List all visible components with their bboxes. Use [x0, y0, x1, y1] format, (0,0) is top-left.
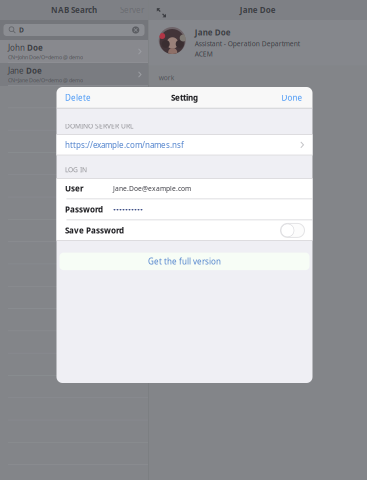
staticText: CN=John Doe/O=demo @ demo: [8, 53, 83, 61]
staticText: User: [65, 183, 84, 194]
staticText: Password: [65, 204, 103, 215]
staticText: Done: [281, 92, 302, 103]
staticText: Delete: [65, 92, 91, 103]
staticText: Jane Doe: [240, 5, 276, 15]
staticText: https://example.com/names.nsf: [65, 139, 184, 150]
staticText: Get the full version: [148, 256, 221, 267]
staticText: Server: [120, 5, 144, 15]
staticText: Assistant - Operation Department: [195, 39, 300, 48]
button[interactable]: Delete: [56, 87, 99, 108]
button[interactable]: Get the full version: [59, 253, 309, 270]
staticText: Save Password: [65, 225, 124, 236]
button[interactable]: Collapse sidebar: [149, 0, 169, 20]
staticText: DOMINO SERVER URL: [65, 121, 133, 130]
staticText: CN=Jane Doe/O=demo @ demo: [8, 76, 83, 84]
button[interactable]: https://example.com/names.nsf: [56, 134, 312, 155]
staticText: Setting: [171, 92, 198, 103]
button[interactable]: Server: [116, 0, 148, 20]
button[interactable]: Save Password: [56, 220, 312, 241]
staticText: Jane Doe: [8, 65, 42, 76]
staticText: LOG IN: [65, 165, 87, 174]
staticText: ••••••••••: [113, 204, 143, 215]
staticText: work: [159, 73, 175, 82]
staticText: D: [19, 26, 24, 34]
staticText: Jane.Doe@example.com: [113, 184, 191, 193]
staticText: John Doe: [8, 42, 43, 53]
staticText: NAB Search: [51, 5, 97, 15]
button[interactable]: John Doe: [0, 40, 148, 63]
button[interactable]: Jane Doe: [0, 63, 148, 86]
staticText: Jane Doe: [195, 27, 231, 38]
staticText: ACEM: [195, 49, 213, 58]
button[interactable]: Done: [271, 87, 312, 108]
